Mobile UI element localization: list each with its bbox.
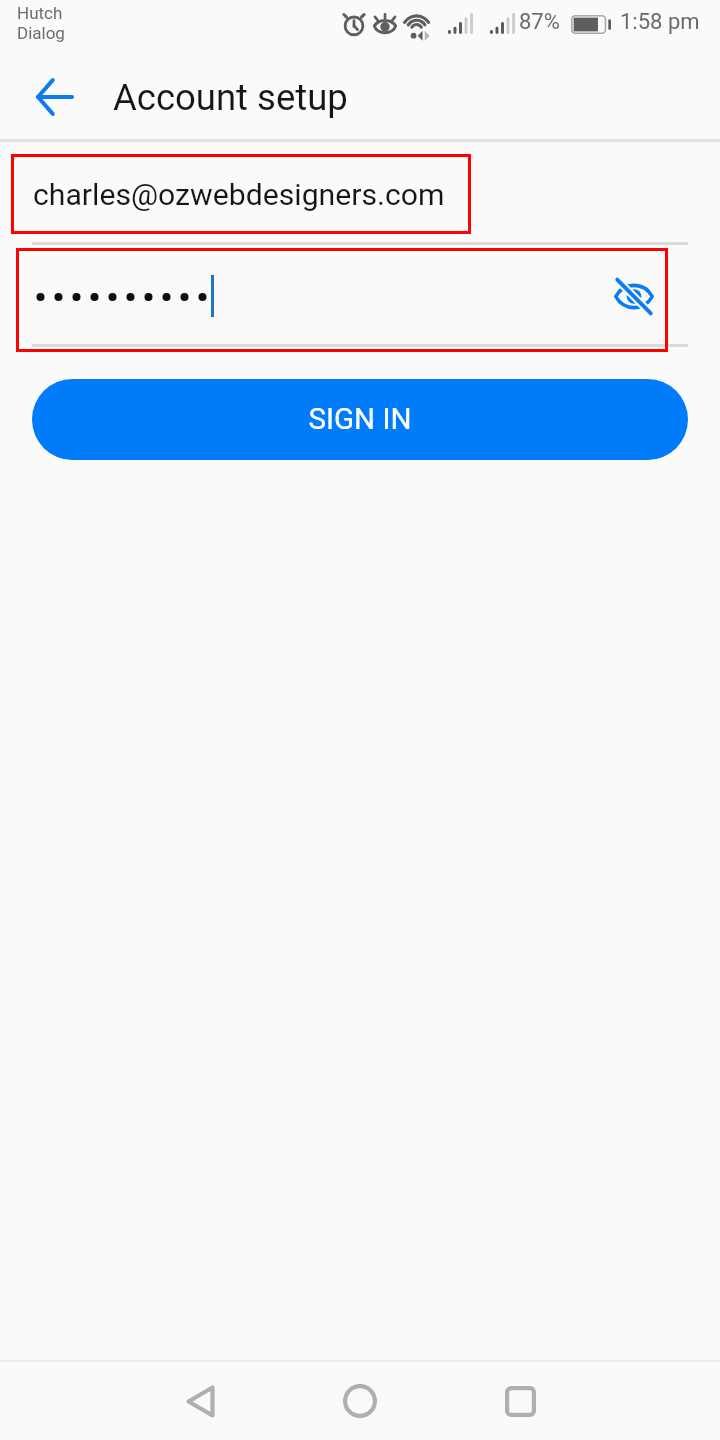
- button[interactable]: Show password: [0, 248, 720, 352]
- staticText: Hutch: [17, 3, 63, 23]
- button[interactable]: charles@ozwebdesigners.com: [0, 154, 720, 244]
- staticText: Dialog: [17, 23, 65, 43]
- button[interactable]: Show password: [604, 266, 664, 326]
- button[interactable]: Recent apps: [480, 1362, 560, 1440]
- staticText: SIGN IN: [308, 402, 412, 437]
- staticText: 1:58 pm: [620, 9, 700, 35]
- button[interactable]: Back: [25, 67, 85, 127]
- button[interactable]: SIGN IN: [32, 379, 688, 460]
- button[interactable]: Back: [160, 1362, 240, 1440]
- staticText: charles@ozwebdesigners.com: [33, 177, 445, 212]
- staticText: Account setup: [113, 76, 348, 119]
- button[interactable]: Home: [320, 1362, 400, 1440]
- staticText: 87%: [519, 9, 560, 35]
